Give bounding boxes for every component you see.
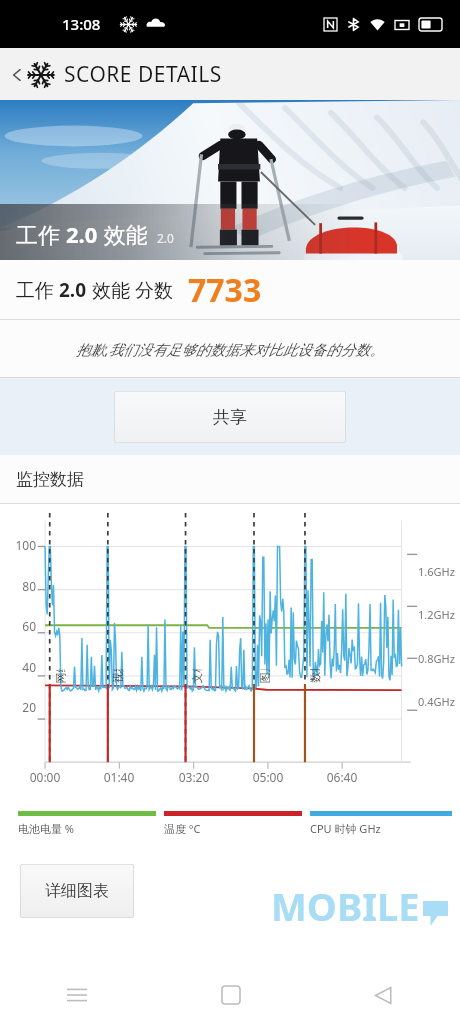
staticText: 工作 bbox=[16, 219, 66, 249]
staticText: 电池电量 % bbox=[18, 821, 75, 836]
staticText: 03:20 bbox=[170, 769, 218, 785]
staticText: 80 bbox=[2, 578, 36, 594]
staticText: 详细图表 bbox=[45, 881, 109, 901]
staticText: 数据操作 bbox=[308, 669, 322, 683]
staticText: 05:00 bbox=[244, 769, 292, 785]
staticText: 40 bbox=[2, 659, 36, 675]
staticText: 监控数据 bbox=[16, 469, 84, 490]
staticText: 2.0 bbox=[157, 230, 174, 246]
staticText: 13:08 bbox=[62, 14, 101, 34]
button[interactable]: Recent apps bbox=[0, 966, 154, 1024]
button[interactable]: 共享 bbox=[114, 391, 346, 443]
staticText: 0.8GHz bbox=[418, 651, 455, 666]
staticText: 01:40 bbox=[95, 769, 143, 785]
staticText: 00:00 bbox=[21, 769, 69, 785]
staticText: 20 bbox=[2, 699, 36, 715]
staticText: 1.6GHz bbox=[418, 564, 455, 579]
staticText: 网络浏览 2.0 bbox=[52, 669, 67, 683]
staticText: 06:40 bbox=[318, 769, 366, 785]
staticText: 效能 bbox=[98, 219, 148, 249]
staticText: 0.4GHz bbox=[418, 694, 455, 709]
button[interactable]: Back to score details bbox=[6, 60, 222, 89]
staticText: 视频编辑 bbox=[111, 669, 125, 683]
button[interactable]: Back bbox=[307, 966, 460, 1024]
staticText: 共享 bbox=[213, 407, 247, 428]
staticText: 100 bbox=[2, 537, 36, 553]
staticText: 2.0 bbox=[59, 277, 87, 303]
staticText: 温度 °C bbox=[164, 821, 201, 836]
staticText: CPU 时钟 GHz bbox=[310, 821, 381, 836]
staticText: 图片编辑 2.0 bbox=[256, 669, 271, 683]
staticText: 工作 bbox=[16, 277, 59, 303]
staticText: 文档编写 2.0 bbox=[188, 669, 203, 683]
button[interactable]: Home bbox=[154, 966, 307, 1024]
staticText: 2.0 bbox=[66, 219, 98, 249]
staticText: SCORE DETAILS bbox=[64, 60, 222, 89]
staticText: 1.2GHz bbox=[418, 607, 455, 622]
staticText: 效能 分数 bbox=[87, 277, 173, 303]
button[interactable]: 详细图表 bbox=[20, 864, 134, 918]
staticText: 7733 bbox=[188, 268, 262, 312]
staticText: 抱歉,我们没有足够的数据来对比此设备的分数。 bbox=[76, 339, 385, 359]
staticText: MOBILE bbox=[271, 880, 420, 932]
staticText: 60 bbox=[2, 618, 36, 634]
